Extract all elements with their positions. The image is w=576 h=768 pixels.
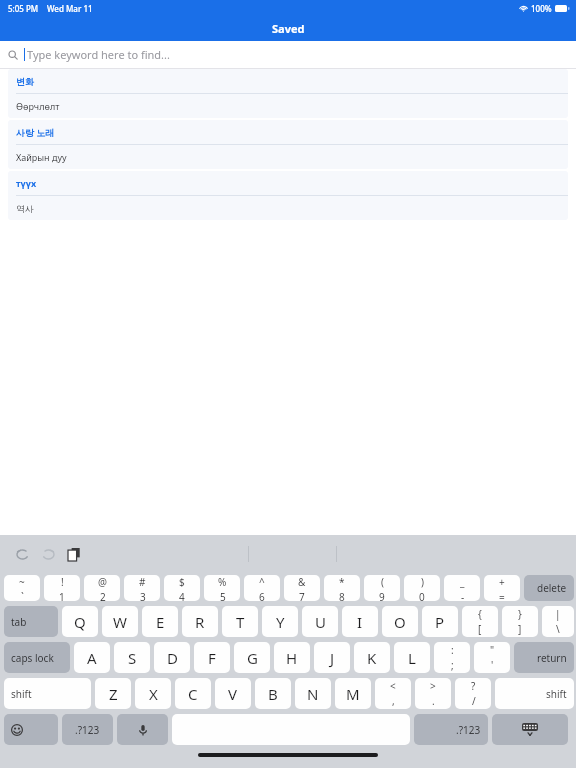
button[interactable]: {	[462, 606, 498, 637]
staticText: 5	[220, 590, 226, 601]
button[interactable]: return	[514, 642, 574, 673]
button[interactable]: shift	[495, 678, 574, 709]
button[interactable]: &	[284, 575, 320, 601]
button[interactable]: (	[364, 575, 400, 601]
button[interactable]: U	[302, 606, 338, 637]
staticText: <	[390, 679, 396, 693]
button[interactable]: }	[502, 606, 538, 637]
button[interactable]: Emoji	[4, 714, 58, 745]
button[interactable]: L	[394, 642, 430, 673]
staticText: ^	[259, 575, 265, 589]
button[interactable]: X	[135, 678, 171, 709]
button[interactable]: S	[114, 642, 150, 673]
button[interactable]: G	[234, 642, 270, 673]
button[interactable]: #	[124, 575, 160, 601]
button[interactable]: P	[422, 606, 458, 637]
button[interactable]: !	[44, 575, 80, 601]
staticText: @	[98, 575, 107, 589]
staticText: .	[432, 694, 435, 708]
button[interactable]: $	[164, 575, 200, 601]
staticText: Өөрчлөлт	[16, 100, 60, 112]
staticText: T	[236, 612, 245, 632]
staticText: Type keyword here to find...	[27, 47, 170, 62]
staticText: N	[307, 684, 319, 704]
staticText: ?	[471, 679, 476, 693]
button[interactable]: V	[215, 678, 251, 709]
button[interactable]: 사랑 노래	[8, 120, 568, 169]
button[interactable]: K	[354, 642, 390, 673]
button[interactable]: R	[182, 606, 218, 637]
button[interactable]: M	[335, 678, 371, 709]
button[interactable]: E	[142, 606, 178, 637]
button[interactable]: Redo	[38, 544, 58, 564]
button[interactable]: Dictate	[117, 714, 168, 745]
button[interactable]: "	[474, 642, 510, 673]
button[interactable]: tab	[4, 606, 58, 637]
button[interactable]: I	[342, 606, 378, 637]
button[interactable]: +	[484, 575, 520, 601]
button[interactable]: .?123	[62, 714, 113, 745]
button[interactable]: caps lock	[4, 642, 70, 673]
button[interactable]: |	[542, 606, 574, 637]
button[interactable]: <	[375, 678, 411, 709]
button[interactable]: J	[314, 642, 350, 673]
button[interactable]: W	[102, 606, 138, 637]
staticText: C	[188, 684, 198, 704]
staticText: W	[113, 612, 127, 632]
staticText: K	[367, 648, 377, 668]
button[interactable]: delete	[524, 575, 574, 601]
staticText: V	[228, 684, 238, 704]
button[interactable]: түүх	[8, 171, 568, 220]
staticText: :	[451, 643, 454, 657]
button[interactable]: N	[295, 678, 331, 709]
staticText: }	[518, 607, 522, 621]
button[interactable]: A	[74, 642, 110, 673]
button[interactable]: .?123	[414, 714, 488, 745]
button[interactable]: shift	[4, 678, 91, 709]
button[interactable]: *	[324, 575, 360, 601]
staticText: D	[167, 648, 178, 668]
button[interactable]: Type keyword here to find...	[8, 47, 568, 62]
staticText: shift	[11, 687, 32, 701]
staticText: _	[460, 575, 465, 589]
button[interactable]: )	[404, 575, 440, 601]
staticText: B	[268, 684, 278, 704]
button[interactable]: H	[274, 642, 310, 673]
button[interactable]: >	[415, 678, 451, 709]
staticText: |	[555, 607, 561, 621]
button[interactable]: ^	[244, 575, 280, 601]
button[interactable]: _	[444, 575, 480, 601]
button[interactable]: Undo	[12, 544, 32, 564]
staticText: O	[394, 612, 406, 632]
staticText: 역사	[16, 203, 34, 214]
button[interactable]: Q	[62, 606, 98, 637]
staticText: 사랑 노래	[16, 126, 55, 138]
button[interactable]: ~	[4, 575, 40, 601]
button[interactable]: F	[194, 642, 230, 673]
staticText: 변화	[16, 76, 34, 87]
button[interactable]: C	[175, 678, 211, 709]
button[interactable]: Hide keyboard	[492, 714, 568, 745]
staticText: S	[128, 648, 137, 668]
button[interactable]: :	[434, 642, 470, 673]
button[interactable]: Paste	[64, 544, 84, 564]
staticText: &	[298, 575, 306, 589]
button[interactable]: Y	[262, 606, 298, 637]
button[interactable]: D	[154, 642, 190, 673]
staticText: !	[61, 575, 64, 589]
button[interactable]: Z	[95, 678, 131, 709]
other: Hide keyboard	[522, 723, 538, 736]
button[interactable]: 변화	[8, 69, 568, 118]
staticText: /	[472, 694, 476, 708]
button[interactable]: @	[84, 575, 120, 601]
staticText: M	[346, 684, 360, 704]
staticText: 4	[179, 590, 185, 601]
staticText: .?123	[456, 723, 481, 737]
button[interactable]: %	[204, 575, 240, 601]
button[interactable]: O	[382, 606, 418, 637]
staticText: P	[435, 612, 445, 632]
button[interactable]: ?	[455, 678, 491, 709]
button[interactable]: B	[255, 678, 291, 709]
button[interactable]: T	[222, 606, 258, 637]
